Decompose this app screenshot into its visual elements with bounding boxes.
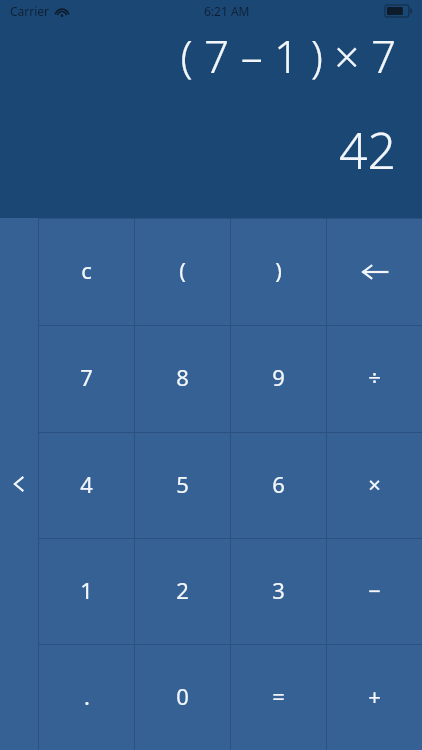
staticText: ÷ [368,362,381,392]
staticText: Carrier [10,3,50,19]
staticText: 3 [272,575,285,605]
button[interactable]: 7 [39,326,134,432]
button[interactable]: = [231,645,326,750]
staticText: ) [275,255,282,285]
button[interactable]: 1 [39,539,134,644]
button[interactable]: ( [135,219,230,325]
button[interactable]: ÷ [327,326,422,432]
button[interactable]: Open history drawer [0,218,38,750]
staticText: 7 [80,362,93,392]
staticText: ( 7 – 1 ) × 7 [16,26,396,86]
button[interactable]: c [39,219,134,325]
staticText: 5 [176,469,189,499]
staticText: . [84,681,90,711]
button[interactable]: 6 [231,433,326,538]
staticText: 4 [80,469,93,499]
button[interactable]: × [327,433,422,538]
button[interactable]: 0 [135,645,230,750]
button[interactable]: 9 [231,326,326,432]
staticText: ( [179,255,186,285]
button[interactable]: 5 [135,433,230,538]
button[interactable]: 3 [231,539,326,644]
staticText: 9 [272,362,285,392]
staticText: 0 [176,681,189,711]
button[interactable]: . [39,645,134,750]
staticText: 1 [80,575,93,605]
button[interactable]: 8 [135,326,230,432]
staticText: 8 [176,362,189,392]
staticText: 6:21 AM [204,3,250,19]
button[interactable]: ) [231,219,326,325]
staticText: − [368,575,381,605]
staticText: 42 [16,116,396,184]
button[interactable]: − [327,539,422,644]
button[interactable]: Backspace [327,219,422,325]
staticText: c [81,255,92,285]
staticText: × [368,469,381,499]
button[interactable]: 4 [39,433,134,538]
staticText: 2 [176,575,189,605]
button[interactable]: + [327,645,422,750]
staticText: = [272,681,285,711]
staticText: + [368,681,381,711]
button[interactable]: 2 [135,539,230,644]
staticText: 6 [272,469,285,499]
